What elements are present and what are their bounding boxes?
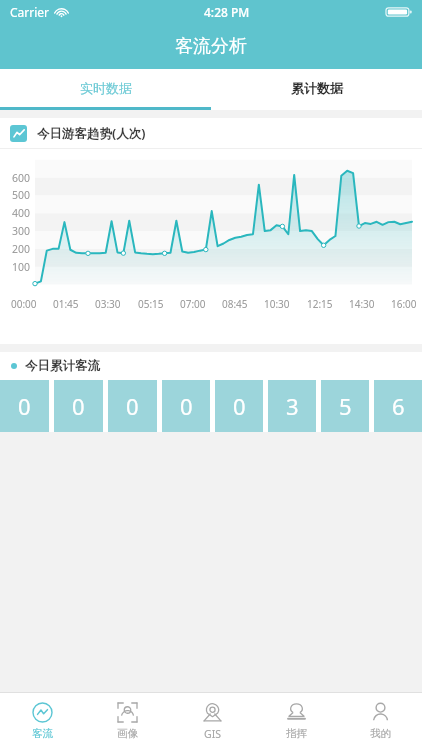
staticText: Carrier bbox=[10, 4, 50, 20]
staticText: 今日累计客流 bbox=[25, 358, 100, 374]
staticText: 6 bbox=[392, 391, 405, 421]
staticText: 画像 bbox=[117, 727, 138, 740]
staticText: 累计数据 bbox=[291, 80, 343, 96]
other: GIS bbox=[202, 702, 223, 723]
staticText: 0 bbox=[233, 391, 246, 421]
staticText: 0 bbox=[126, 391, 139, 421]
staticText: 今日游客趋势(人次) bbox=[37, 125, 146, 142]
other: 客流 bbox=[32, 702, 53, 723]
button[interactable]: GIS bbox=[170, 693, 254, 750]
button[interactable]: 我的 bbox=[338, 693, 422, 750]
staticText: 我的 bbox=[370, 727, 391, 740]
staticText: 600 bbox=[12, 171, 31, 185]
staticText: 16:00 bbox=[391, 297, 417, 311]
staticText: 300 bbox=[12, 224, 31, 238]
staticText: 客流 bbox=[32, 727, 53, 740]
other: 指挥 bbox=[286, 702, 307, 723]
staticText: 0 bbox=[72, 391, 85, 421]
staticText: 07:00 bbox=[180, 297, 206, 311]
button[interactable]: 实时数据 bbox=[0, 69, 211, 107]
staticText: 500 bbox=[12, 188, 31, 202]
staticText: 指挥 bbox=[286, 727, 307, 740]
staticText: 客流分析 bbox=[175, 35, 247, 58]
staticText: 5 bbox=[339, 391, 352, 421]
staticText: 14:30 bbox=[349, 297, 375, 311]
button[interactable]: 客流 bbox=[0, 693, 85, 750]
staticText: 实时数据 bbox=[80, 80, 132, 96]
staticText: 10:30 bbox=[264, 297, 290, 311]
button[interactable]: 累计数据 bbox=[211, 69, 422, 107]
staticText: 0 bbox=[180, 391, 193, 421]
staticText: 08:45 bbox=[222, 297, 248, 311]
other: 画像 bbox=[117, 702, 138, 723]
other: 我的 bbox=[370, 702, 391, 723]
staticText: 200 bbox=[12, 242, 31, 256]
staticText: GIS bbox=[204, 727, 221, 741]
button[interactable]: 画像 bbox=[85, 693, 170, 750]
staticText: 12:15 bbox=[307, 297, 333, 311]
staticText: 05:15 bbox=[138, 297, 164, 311]
staticText: 0 bbox=[18, 391, 31, 421]
staticText: 400 bbox=[12, 206, 31, 220]
staticText: 01:45 bbox=[53, 297, 79, 311]
staticText: 4:28 PM bbox=[204, 4, 250, 20]
staticText: 00:00 bbox=[11, 297, 37, 311]
staticText: 100 bbox=[12, 260, 31, 274]
staticText: 03:30 bbox=[95, 297, 121, 311]
staticText: 3 bbox=[286, 391, 299, 421]
button[interactable]: 指挥 bbox=[254, 693, 338, 750]
